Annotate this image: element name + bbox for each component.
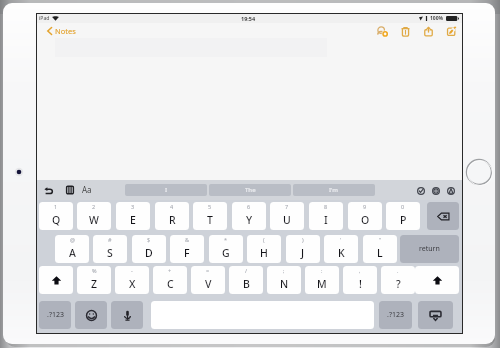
button[interactable]: & (170, 235, 204, 263)
staticText: ? (396, 277, 401, 291)
button[interactable]: Hide keyboard (418, 301, 453, 329)
staticText: ) (302, 236, 304, 243)
staticText: U (283, 213, 291, 227)
staticText: 100% (430, 15, 444, 22)
staticText: 3 (131, 203, 135, 210)
button[interactable]: Shift right (415, 266, 459, 294)
button[interactable]: 7 (270, 202, 304, 230)
staticText: % (92, 267, 97, 274)
staticText: ( (263, 236, 265, 243)
button[interactable]: ; (267, 266, 301, 294)
staticText: L (377, 246, 383, 260)
button[interactable]: I (125, 184, 207, 196)
staticText: # (108, 236, 112, 243)
staticText: A (69, 246, 76, 260)
button[interactable]: Dictate (111, 301, 143, 329)
button[interactable]: 4 (155, 202, 189, 230)
staticText: G (222, 246, 230, 260)
button[interactable]: Confirm (417, 187, 425, 195)
staticText: I (165, 186, 168, 194)
button[interactable]: : (305, 266, 339, 294)
button[interactable]: Backspace (427, 202, 459, 230)
staticText: I (324, 213, 328, 227)
staticText: Aa (82, 184, 92, 195)
staticText: & (185, 236, 190, 243)
staticText: " (379, 236, 382, 243)
button[interactable]: Undo (44, 185, 54, 195)
button[interactable]: 5 (193, 202, 227, 230)
button[interactable]: .?123 (39, 301, 71, 329)
button[interactable]: - (115, 266, 149, 294)
staticText: / (245, 267, 248, 274)
staticText: S (107, 246, 113, 260)
button[interactable]: " (363, 235, 397, 263)
button[interactable]: Emoji (75, 301, 107, 329)
button[interactable]: Table (65, 185, 75, 195)
button[interactable]: Share (421, 24, 435, 38)
staticText: O (361, 213, 370, 227)
button[interactable]: Shift (39, 266, 73, 294)
button[interactable]: ( (247, 235, 281, 263)
staticText: , (359, 267, 361, 274)
button[interactable]: 2 (77, 202, 111, 230)
button[interactable]: Notes (47, 26, 76, 36)
staticText: 9 (363, 203, 367, 210)
button[interactable]: Aa (82, 184, 92, 195)
button[interactable]: Add people (375, 24, 389, 38)
staticText: ' (340, 236, 342, 243)
staticText: 4 (170, 203, 174, 210)
staticText: M (317, 277, 327, 291)
button[interactable]: ) (286, 235, 320, 263)
staticText: 8 (324, 203, 328, 210)
button[interactable]: Delete (398, 24, 412, 38)
button[interactable]: New note (444, 24, 458, 38)
button[interactable]: 3 (116, 202, 150, 230)
staticText: : (321, 267, 323, 274)
staticText: Z (91, 277, 98, 291)
staticText: 0 (401, 203, 405, 210)
staticText: $ (147, 236, 151, 243)
staticText: Notes (55, 26, 76, 36)
staticText: ; (283, 267, 285, 274)
button[interactable]: , (343, 266, 377, 294)
staticText: return (419, 244, 440, 254)
staticText: The (245, 186, 256, 194)
staticText: .?123 (47, 310, 64, 320)
staticText: Y (246, 213, 253, 227)
button[interactable]: return (400, 235, 459, 263)
staticText: C (167, 277, 174, 291)
button[interactable]: / (229, 266, 263, 294)
button[interactable]: 0 (386, 202, 420, 230)
staticText: N (280, 277, 289, 291)
button[interactable]: 6 (232, 202, 266, 230)
button[interactable]: @ (55, 235, 89, 263)
button[interactable]: ' (324, 235, 358, 263)
button[interactable]: I'm (293, 184, 375, 196)
staticText: @ (70, 236, 75, 243)
staticText: 5 (208, 203, 212, 210)
staticText: Q (52, 213, 61, 227)
staticText: V (205, 277, 212, 291)
button[interactable]: 9 (348, 202, 382, 230)
button[interactable]: = (191, 266, 225, 294)
button[interactable]: + (153, 266, 187, 294)
button[interactable]: 1 (39, 202, 73, 230)
button[interactable]: Markup (447, 187, 455, 195)
button[interactable]: $ (132, 235, 166, 263)
button[interactable]: .?123 (379, 301, 412, 329)
staticText: H (260, 246, 268, 260)
button[interactable]: # (93, 235, 127, 263)
staticText: P (400, 213, 407, 227)
staticText: . (397, 267, 399, 274)
button[interactable]: Settings (432, 187, 440, 195)
button[interactable]: . (381, 266, 415, 294)
button[interactable]: 8 (309, 202, 343, 230)
staticText: D (145, 246, 153, 260)
staticText: * (224, 236, 228, 243)
button[interactable]: % (77, 266, 111, 294)
staticText: + (168, 267, 172, 274)
button[interactable]: * (209, 235, 243, 263)
button[interactable]: The (209, 184, 291, 196)
staticText: B (243, 277, 250, 291)
